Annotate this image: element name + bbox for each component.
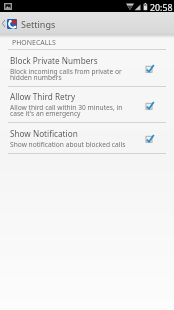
- button[interactable]: Toggle: [144, 132, 156, 144]
- staticText: PHONECALLS: [12, 38, 56, 47]
- button[interactable]: Allow Third Retry: [0, 87, 174, 122]
- staticText: Allow Third Retry: [10, 91, 76, 102]
- staticText: 20:58: [150, 2, 173, 14]
- staticText: Allow third call within 30 minutes, in c…: [10, 103, 123, 118]
- staticText: Show notification about blocked calls: [10, 140, 126, 149]
- staticText: Settings: [21, 18, 56, 30]
- button[interactable]: Block Private Numbers: [0, 50, 174, 86]
- button[interactable]: Show Notification: [0, 123, 174, 153]
- staticText: Show Notification: [10, 128, 78, 139]
- staticText: Block incoming calls from private or hid…: [10, 67, 122, 82]
- button[interactable]: Toggle: [144, 99, 156, 111]
- button[interactable]: Back: [0, 12, 7, 35]
- staticText: Block Private Numbers: [10, 55, 98, 66]
- button[interactable]: Toggle: [144, 62, 156, 74]
